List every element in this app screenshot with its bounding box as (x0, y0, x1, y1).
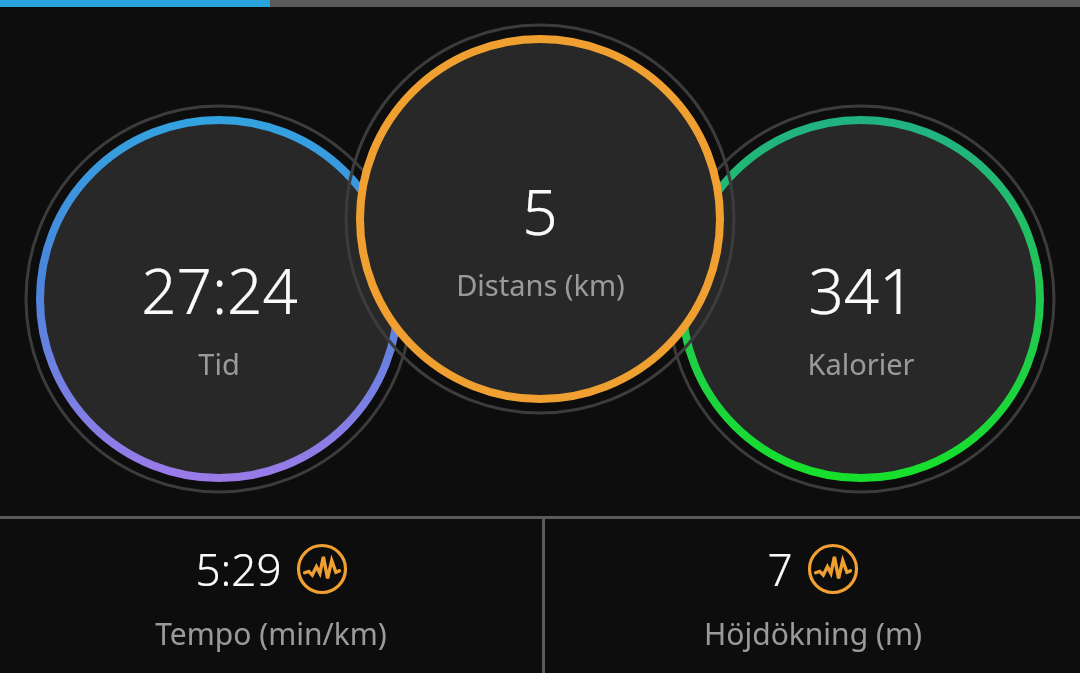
staticText: 341 (808, 248, 915, 332)
button[interactable]: 341 (682, 120, 1040, 478)
staticText: 7 (767, 539, 793, 599)
staticText: Tid (198, 344, 240, 383)
staticText: Höjdökning (m) (704, 613, 922, 654)
other: Activity metric (296, 543, 348, 595)
button[interactable]: 27:24 (40, 120, 398, 478)
staticText: Distans (km) (456, 265, 625, 304)
staticText: Tempo (min/km) (155, 613, 387, 654)
staticText: 5 (522, 169, 558, 253)
staticText: 27:24 (141, 248, 298, 332)
other: Activity metric (807, 543, 859, 595)
button[interactable]: 5 (360, 39, 720, 399)
staticText: Kalorier (807, 344, 915, 383)
button[interactable]: 5:29 (0, 519, 542, 673)
staticText: 5:29 (195, 539, 282, 599)
button[interactable]: 7 (545, 519, 1080, 673)
